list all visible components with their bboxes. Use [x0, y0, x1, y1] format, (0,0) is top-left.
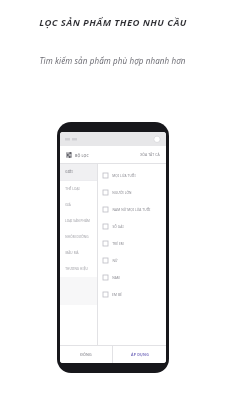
staticText: BỘ LỌC — [75, 153, 89, 158]
button[interactable]: NHÓM DƯỠNG — [60, 229, 98, 245]
staticText: TRẺ EM — [112, 242, 124, 246]
staticText: LOẠI SẢN PHẨM — [65, 219, 90, 223]
button[interactable]: NAM NỮ MỌI LỨA TUỔI — [103, 201, 166, 218]
button[interactable]: NGƯỜI LỚN — [103, 184, 166, 201]
staticText: MẪU MÃ — [65, 251, 79, 255]
button[interactable]: TRẺ EM — [103, 235, 166, 252]
staticText: ÁP DỤNG — [131, 352, 149, 357]
button[interactable]: GIỚI — [60, 164, 98, 180]
staticText: ĐÓNG — [80, 352, 92, 357]
staticText: GIỚI — [65, 170, 73, 174]
button[interactable]: XÓA TẤT CẢ — [139, 149, 161, 160]
staticText: EM BÉ — [112, 293, 122, 297]
button[interactable]: GIÁ — [60, 197, 98, 213]
staticText: NAM NỮ MỌI LỨA TUỔI — [112, 208, 151, 212]
button[interactable]: NAM — [103, 269, 166, 286]
staticText: NAM — [112, 276, 120, 280]
button[interactable]: MẪU MÃ — [60, 245, 98, 261]
other: Bộ lọc — [66, 152, 72, 158]
button[interactable]: MỌI LỨA TUỔI — [103, 167, 166, 184]
staticText: XÓA TẤT CẢ — [140, 152, 160, 157]
staticText: THỂ LOẠI — [65, 187, 80, 191]
staticText: NỮ — [112, 259, 118, 263]
button[interactable]: ĐÓNG — [60, 346, 112, 363]
staticText: GIÁ — [65, 203, 71, 207]
button[interactable]: THƯƠNG HIỆU — [60, 261, 98, 277]
button[interactable]: SỐ GÁI — [103, 218, 166, 235]
button[interactable]: ÁP DỤNG — [113, 346, 166, 363]
staticText: THƯƠNG HIỆU — [65, 267, 88, 271]
staticText: MỌI LỨA TUỔI — [112, 174, 136, 178]
button[interactable]: EM BÉ — [103, 286, 166, 303]
button[interactable]: NỮ — [103, 252, 166, 269]
button[interactable]: THỂ LOẠI — [60, 181, 98, 197]
button[interactable]: Bộ lọc — [65, 150, 90, 160]
staticText: Tìm kiếm sản phẩm phù hợp nhanh hơn — [39, 55, 186, 66]
staticText: SỐ GÁI — [112, 225, 124, 229]
button[interactable]: LOẠI SẢN PHẨM — [60, 213, 98, 229]
staticText: LỌC SẢN PHẨM THEO NHU CẦU — [39, 16, 187, 29]
staticText: NGƯỜI LỚN — [112, 191, 132, 195]
staticText: NHÓM DƯỠNG — [65, 235, 89, 239]
